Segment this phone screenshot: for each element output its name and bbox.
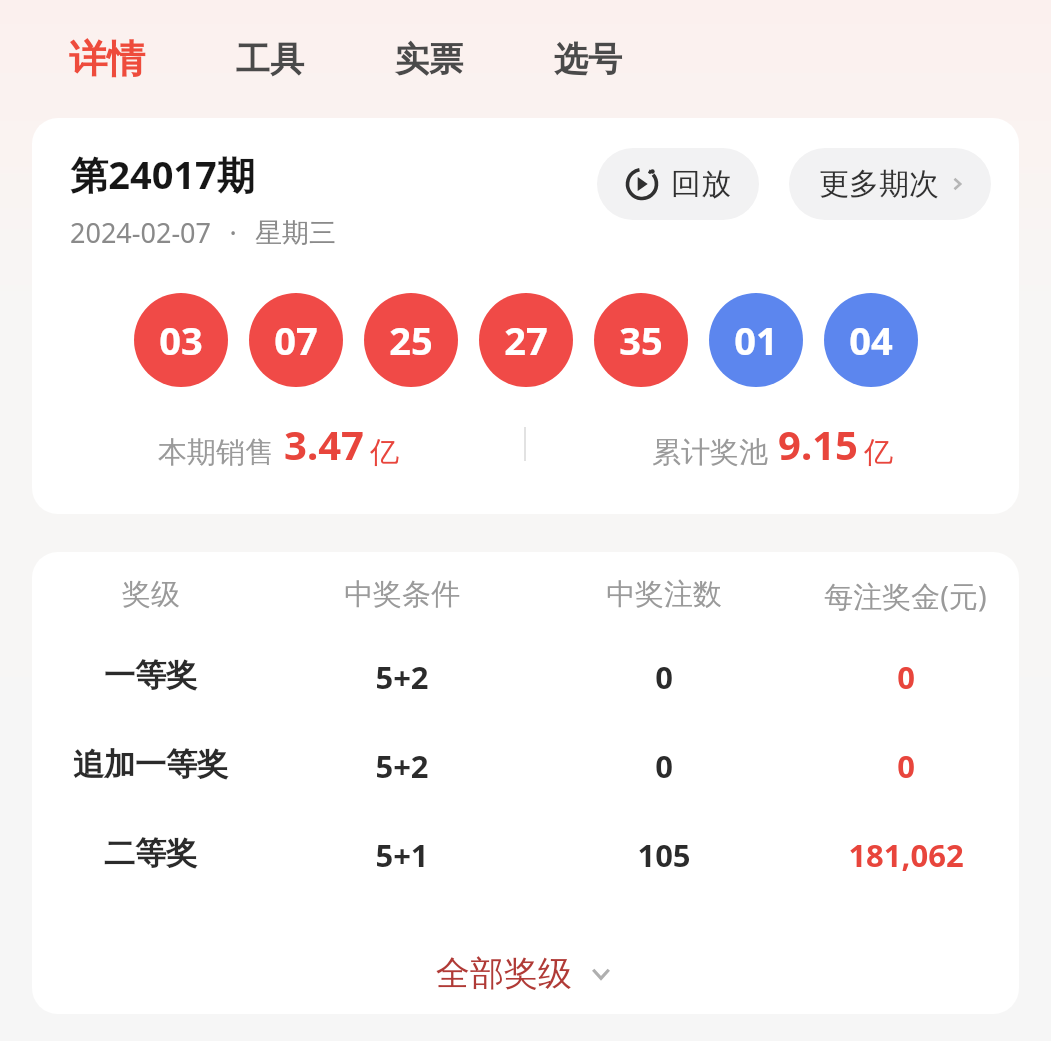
button[interactable]: 选号 [544, 30, 632, 89]
staticText: 5+2 [375, 656, 429, 698]
staticText: 35 [619, 314, 663, 366]
staticText: 选号 [554, 38, 622, 81]
staticText: 一等奖 [104, 656, 197, 695]
button[interactable]: Replay [597, 148, 759, 220]
staticText: 亿 [370, 434, 399, 471]
staticText: 27 [504, 314, 548, 366]
staticText: 0 [897, 656, 915, 698]
staticText: 回放 [671, 165, 731, 203]
staticText: 2024-02-07 [70, 214, 211, 251]
staticText: 3.47 [284, 417, 364, 471]
staticText: 累计奖池 [652, 434, 768, 471]
staticText: 0 [655, 745, 673, 787]
staticText: 工具 [236, 38, 304, 81]
staticText: 奖级 [122, 576, 180, 613]
staticText: 全部奖级 [436, 952, 572, 995]
staticText: 实票 [395, 38, 463, 81]
staticText: 更多期次 [819, 165, 939, 203]
staticText: 01 [734, 314, 778, 366]
staticText: 105 [637, 834, 691, 876]
staticText: 中奖注数 [606, 576, 722, 613]
staticText: 二等奖 [104, 834, 197, 873]
staticText: 0 [897, 745, 915, 787]
other: Replay [625, 167, 659, 201]
staticText: 本期销售 [158, 434, 274, 471]
staticText: 03 [159, 314, 203, 366]
staticText: 5+1 [375, 834, 429, 876]
staticText: 星期三 [255, 216, 336, 250]
button[interactable]: 工具 [226, 30, 314, 89]
button[interactable]: 实票 [385, 30, 473, 89]
staticText: · [229, 214, 237, 251]
staticText: 9.15 [778, 417, 858, 471]
staticText: 5+2 [375, 745, 429, 787]
staticText: 第24017期 [70, 148, 255, 200]
staticText: 详情 [69, 35, 145, 83]
button[interactable]: 详情 [59, 27, 155, 91]
button[interactable]: 更多期次 [789, 148, 991, 220]
staticText: 07 [274, 314, 318, 366]
staticText: 中奖条件 [344, 576, 460, 613]
staticText: 亿 [864, 434, 893, 471]
staticText: 25 [389, 314, 433, 366]
staticText: 181,062 [848, 834, 964, 876]
staticText: 每注奖金(元) [824, 576, 987, 616]
staticText: 追加一等奖 [73, 745, 228, 784]
staticText: 04 [849, 314, 893, 366]
staticText: 0 [655, 656, 673, 698]
button[interactable]: 全部奖级 [418, 944, 634, 1003]
